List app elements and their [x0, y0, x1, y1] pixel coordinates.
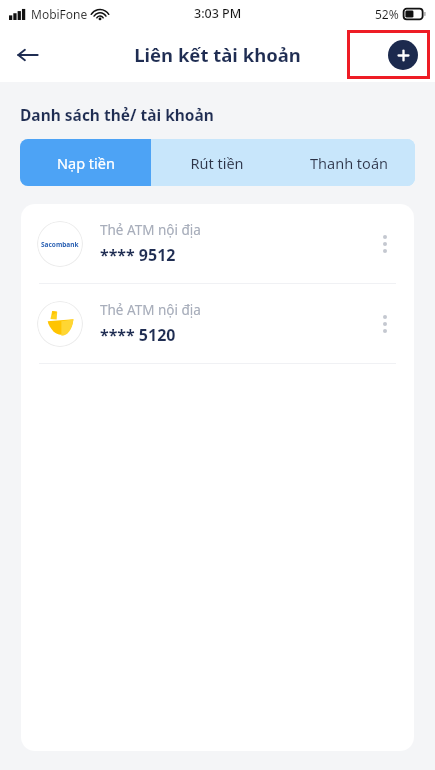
button[interactable]: Thẻ ATM nội địa: [21, 284, 414, 363]
button[interactable]: Rút tiền: [151, 139, 283, 186]
button[interactable]: Nạp tiền: [20, 139, 151, 186]
button[interactable]: More options: [368, 227, 402, 261]
staticText: Danh sách thẻ/ tài khoản: [20, 104, 214, 125]
staticText: 3:03 PM: [194, 5, 242, 22]
button[interactable]: Add account: [388, 40, 418, 70]
button[interactable]: Back: [8, 35, 48, 75]
staticText: 52%: [375, 6, 399, 22]
button[interactable]: More options: [368, 307, 402, 341]
staticText: Thẻ ATM nội địa: [100, 221, 201, 239]
staticText: Nạp tiền: [57, 153, 115, 173]
button[interactable]: Thanh toán: [283, 139, 415, 186]
staticText: MobiFone: [31, 6, 88, 22]
staticText: Rút tiền: [190, 153, 244, 173]
staticText: **** 9512: [100, 244, 176, 266]
staticText: Thanh toán: [310, 153, 388, 173]
staticText: Thẻ ATM nội địa: [100, 301, 201, 319]
button[interactable]: Sacombank: [21, 204, 414, 283]
staticText: Liên kết tài khoản: [134, 42, 301, 67]
staticText: **** 5120: [100, 324, 176, 346]
staticText: Sacombank: [41, 240, 79, 249]
